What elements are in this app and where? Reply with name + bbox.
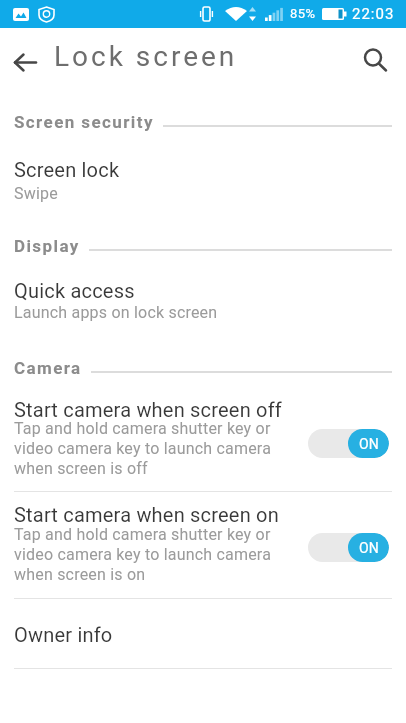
staticText: when screen is on [14, 565, 146, 584]
staticText: video camera key to launch camera [14, 439, 272, 458]
staticText: Swipe [14, 184, 58, 203]
staticText: Launch apps on lock screen [14, 303, 218, 322]
button[interactable]: ON [308, 429, 389, 458]
button[interactable]: Owner info [0, 615, 406, 655]
button[interactable]: ON [308, 533, 389, 562]
staticText: Camera [14, 358, 82, 378]
button[interactable] [354, 40, 398, 84]
staticText: ON [359, 436, 379, 452]
staticText: Display [14, 236, 80, 256]
button[interactable]: Start camera when screen off [0, 390, 406, 430]
staticText: 85% [290, 6, 316, 21]
staticText: Owner info [14, 623, 113, 646]
button[interactable] [5, 42, 45, 82]
staticText: when screen is off [14, 459, 148, 478]
staticText: Tap and hold camera shutter key or [14, 419, 271, 438]
staticText: ON [359, 540, 379, 556]
staticText: Screen security [14, 112, 154, 132]
staticText: Start camera when screen off [14, 398, 282, 421]
staticText: Screen lock [14, 158, 120, 181]
button[interactable]: Start camera when screen on [0, 495, 406, 535]
staticText: Tap and hold camera shutter key or [14, 525, 271, 544]
staticText: 22:03 [352, 5, 395, 23]
button[interactable]: Screen lock [0, 150, 406, 190]
staticText: Start camera when screen on [14, 503, 279, 526]
staticText: video camera key to launch camera [14, 545, 272, 564]
staticText: Quick access [14, 279, 135, 302]
staticText: Lock screen [54, 40, 238, 73]
button[interactable]: Quick access [0, 271, 406, 311]
